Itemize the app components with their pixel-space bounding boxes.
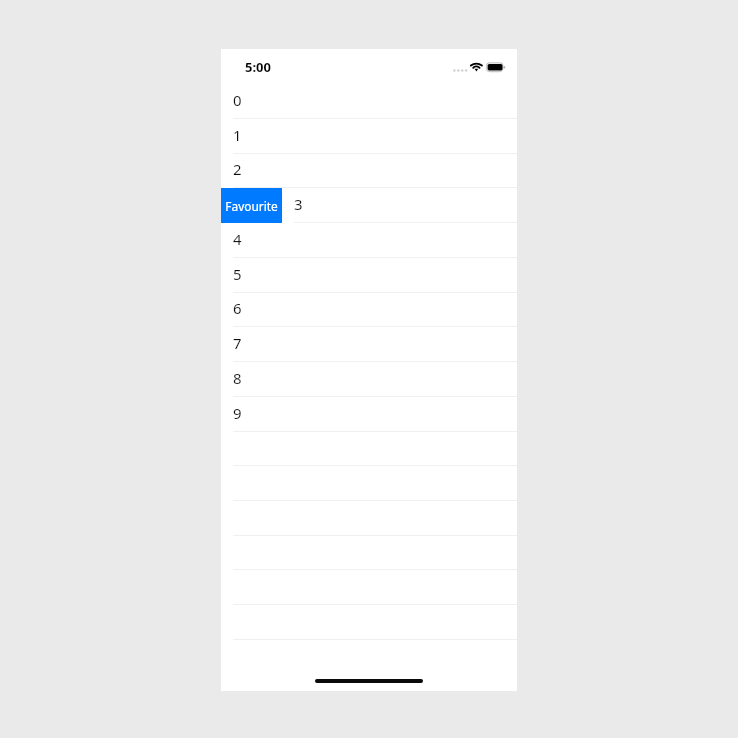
staticText: 9: [233, 403, 242, 423]
button[interactable]: [221, 431, 517, 466]
button[interactable]: 7: [221, 327, 517, 362]
staticText: 5:00: [245, 58, 271, 76]
button[interactable]: 4: [221, 223, 517, 258]
staticText: 8: [233, 368, 242, 388]
button[interactable]: 1: [221, 119, 517, 154]
button[interactable]: 9: [221, 397, 517, 432]
staticText: 7: [233, 333, 242, 353]
button[interactable]: 3: [282, 188, 517, 223]
staticText: 3: [294, 194, 303, 214]
button[interactable]: 5: [221, 258, 517, 293]
button[interactable]: [221, 535, 517, 570]
button[interactable]: 6: [221, 292, 517, 327]
other: Wi-Fi: [469, 61, 484, 73]
staticText: 5: [233, 264, 242, 284]
button[interactable]: 2: [221, 153, 517, 188]
staticText: 4: [233, 229, 242, 249]
button[interactable]: Favourite: [221, 188, 282, 223]
staticText: 0: [233, 90, 242, 110]
other: Battery: [485, 61, 507, 73]
other: Cellular signal: [453, 69, 467, 72]
staticText: 2: [233, 159, 242, 179]
staticText: 6: [233, 298, 242, 318]
button[interactable]: 8: [221, 362, 517, 397]
button[interactable]: 0: [221, 84, 517, 119]
staticText: Favourite: [225, 198, 278, 214]
staticText: 1: [233, 125, 242, 145]
